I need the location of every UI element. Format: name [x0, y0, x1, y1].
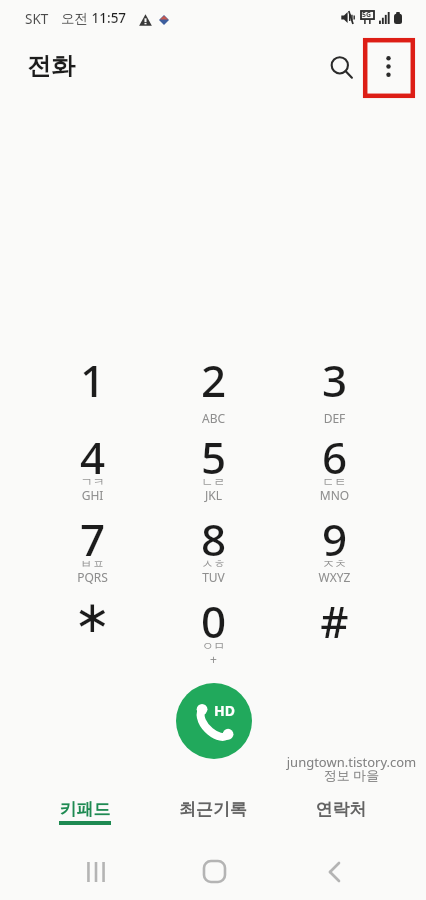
staticText: ㅇㅁ: [153, 638, 274, 653]
button[interactable]: More options: [365, 43, 411, 89]
staticText: GHI: [32, 487, 153, 503]
staticText: #: [274, 591, 395, 651]
staticText: 7: [32, 509, 153, 569]
staticText: SKT: [25, 10, 49, 28]
staticText: 5: [153, 427, 274, 487]
staticText: ㅈㅊ: [274, 556, 395, 571]
staticText: HD: [214, 701, 235, 720]
staticText: +: [153, 651, 274, 667]
staticText: PQRS: [32, 569, 153, 585]
staticText: ∗: [32, 591, 153, 642]
staticText: jungtown.tistory.com: [286, 753, 417, 771]
button[interactable]: 9: [274, 507, 395, 587]
button[interactable]: #: [274, 589, 395, 669]
staticText: ㄱㅋ: [32, 474, 153, 489]
staticText: TUV: [153, 569, 274, 585]
staticText: 5G: [362, 10, 372, 20]
button[interactable]: 5: [153, 425, 274, 505]
button[interactable]: Back: [311, 849, 357, 895]
staticText: ABC: [153, 410, 274, 426]
button[interactable]: 0: [153, 589, 274, 669]
button[interactable]: Search: [319, 45, 365, 91]
button[interactable]: 키패드: [21, 788, 149, 832]
button[interactable]: 4: [32, 425, 153, 505]
staticText: 3: [274, 350, 395, 410]
staticText: 1: [32, 350, 153, 410]
staticText: 연락처: [277, 799, 405, 820]
staticText: 4: [32, 427, 153, 487]
button[interactable]: 7: [32, 507, 153, 587]
staticText: 2: [153, 350, 274, 410]
button[interactable]: 1: [32, 348, 153, 428]
staticText: MNO: [274, 487, 395, 503]
staticText: 정보 마을: [286, 766, 417, 784]
staticText: 최근기록: [149, 799, 277, 820]
staticText: ㅅㅎ: [153, 556, 274, 571]
staticText: ㄷㅌ: [274, 474, 395, 489]
button[interactable]: 3: [274, 348, 395, 428]
staticText: 전화: [27, 51, 75, 81]
staticText: WXYZ: [274, 569, 395, 585]
staticText: ㄴㄹ: [153, 474, 274, 489]
staticText: DEF: [274, 410, 395, 426]
button[interactable]: ∗: [32, 589, 153, 669]
button[interactable]: 2: [153, 348, 274, 428]
staticText: 키패드: [21, 799, 149, 820]
button[interactable]: 6: [274, 425, 395, 505]
staticText: 9: [274, 509, 395, 569]
staticText: 6: [274, 427, 395, 487]
staticText: 오전 11:57: [61, 9, 127, 27]
button[interactable]: 8: [153, 507, 274, 587]
staticText: 0: [153, 591, 274, 651]
button[interactable]: Home: [191, 848, 237, 894]
staticText: JKL: [153, 487, 274, 503]
staticText: ㅂㅍ: [32, 556, 153, 571]
button[interactable]: 최근기록: [149, 788, 277, 832]
button[interactable]: Recent apps: [73, 849, 119, 895]
staticText: 8: [153, 509, 274, 569]
button[interactable]: 연락처: [277, 788, 405, 832]
button[interactable]: Call: [176, 683, 252, 759]
